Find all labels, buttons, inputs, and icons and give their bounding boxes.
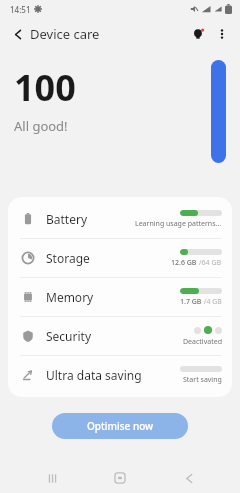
staticText: 14:51 — [10, 4, 31, 15]
staticText: /4 GB — [202, 297, 222, 307]
staticText: 1.7 GB — [180, 297, 202, 307]
button[interactable]: More options — [210, 22, 234, 46]
staticText: Battery — [46, 211, 135, 227]
staticText: Storage — [46, 250, 171, 266]
button[interactable]: Optimise now — [52, 413, 188, 439]
staticText: Security — [46, 328, 183, 344]
staticText: 100 — [14, 63, 76, 112]
staticText: Start saving — [183, 375, 222, 385]
button[interactable]: Ultra data saving — [8, 356, 232, 394]
button[interactable]: Memory — [8, 278, 232, 316]
staticText: Ultra data saving — [46, 367, 180, 383]
staticText: /64 GB — [199, 258, 222, 268]
staticText: Memory — [46, 289, 180, 305]
button[interactable]: Back — [6, 22, 30, 46]
button[interactable]: Back — [172, 463, 206, 493]
staticText: 12.6 GB — [171, 258, 199, 268]
staticText: Deactivated — [183, 337, 222, 347]
staticText: Device care — [30, 25, 100, 43]
button[interactable]: Recents — [35, 463, 69, 493]
button[interactable]: Battery — [8, 200, 232, 238]
staticText: All good! — [14, 117, 68, 135]
button[interactable]: Tips — [186, 22, 210, 46]
staticText: Optimise now — [87, 419, 154, 433]
button[interactable]: Storage — [8, 239, 232, 277]
button[interactable]: Security — [8, 317, 232, 355]
staticText: Learning usage patterns... — [135, 219, 222, 229]
button[interactable]: Home — [103, 463, 137, 493]
